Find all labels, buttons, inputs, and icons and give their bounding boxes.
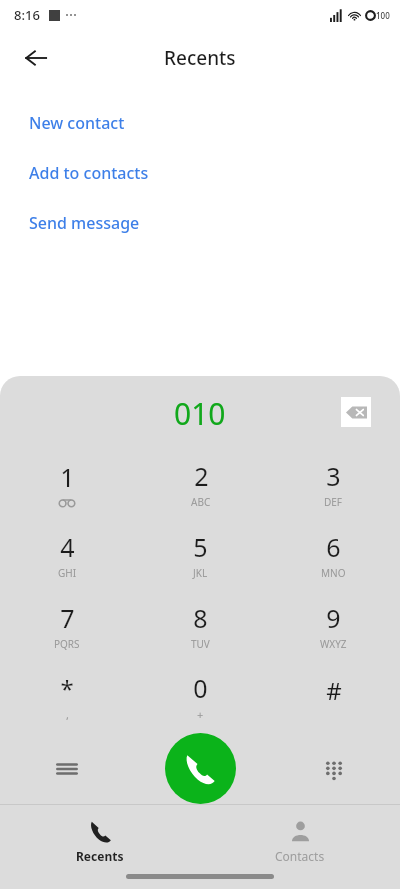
staticText: ABC (191, 495, 211, 509)
button[interactable]: 4 (0, 519, 134, 590)
staticText: 6 (326, 530, 341, 564)
button[interactable]: Contacts (245, 818, 355, 866)
button[interactable]: 7 (0, 590, 134, 661)
button[interactable]: Call (165, 733, 236, 804)
staticText: 4 (60, 530, 75, 564)
staticText: Contacts (275, 848, 325, 864)
staticText: Recents (76, 848, 124, 864)
staticText: TUV (191, 637, 210, 651)
button[interactable]: Send message (0, 212, 400, 234)
staticText: PQRS (54, 637, 80, 651)
button[interactable]: More options (43, 745, 91, 793)
staticText: WXYZ (320, 637, 347, 651)
staticText: 1 (60, 460, 75, 494)
staticText: + (197, 707, 204, 722)
button[interactable]: # (267, 661, 400, 732)
staticText: MNO (321, 566, 346, 580)
staticText: Recents (164, 45, 236, 71)
staticText: 0 (193, 671, 208, 705)
staticText: Send message (29, 212, 140, 234)
staticText: Add to contacts (29, 162, 149, 184)
button[interactable]: Backspace (334, 390, 378, 434)
button[interactable]: 1 (0, 448, 134, 519)
button[interactable]: Hide dialpad (310, 745, 358, 793)
button[interactable]: New contact (0, 112, 400, 134)
button[interactable]: 5 (134, 519, 267, 590)
button[interactable]: Recents (45, 818, 155, 866)
staticText: 010 (174, 393, 226, 434)
staticText: New contact (29, 112, 125, 134)
staticText: # (326, 674, 342, 707)
button[interactable]: Add to contacts (0, 162, 400, 184)
button[interactable]: 8 (134, 590, 267, 661)
button[interactable]: 3 (267, 448, 400, 519)
button[interactable]: * (0, 661, 134, 732)
staticText: 3 (326, 459, 341, 493)
button[interactable]: 6 (267, 519, 400, 590)
staticText: 8:16 (14, 6, 40, 24)
staticText: DEF (324, 495, 343, 509)
button[interactable]: Back (14, 36, 58, 80)
staticText: , (66, 707, 69, 722)
staticText: 5 (193, 530, 208, 564)
staticText: 2 (194, 459, 209, 493)
button[interactable]: 2 (134, 448, 267, 519)
staticText: 100 (376, 10, 390, 21)
staticText: JKL (193, 566, 208, 580)
staticText: * (60, 672, 74, 705)
staticText: 9 (326, 601, 341, 635)
button[interactable]: 0 (134, 661, 267, 732)
staticText: 7 (60, 601, 75, 635)
staticText: GHI (58, 566, 77, 580)
staticText: 8 (193, 601, 208, 635)
button[interactable]: 9 (267, 590, 400, 661)
